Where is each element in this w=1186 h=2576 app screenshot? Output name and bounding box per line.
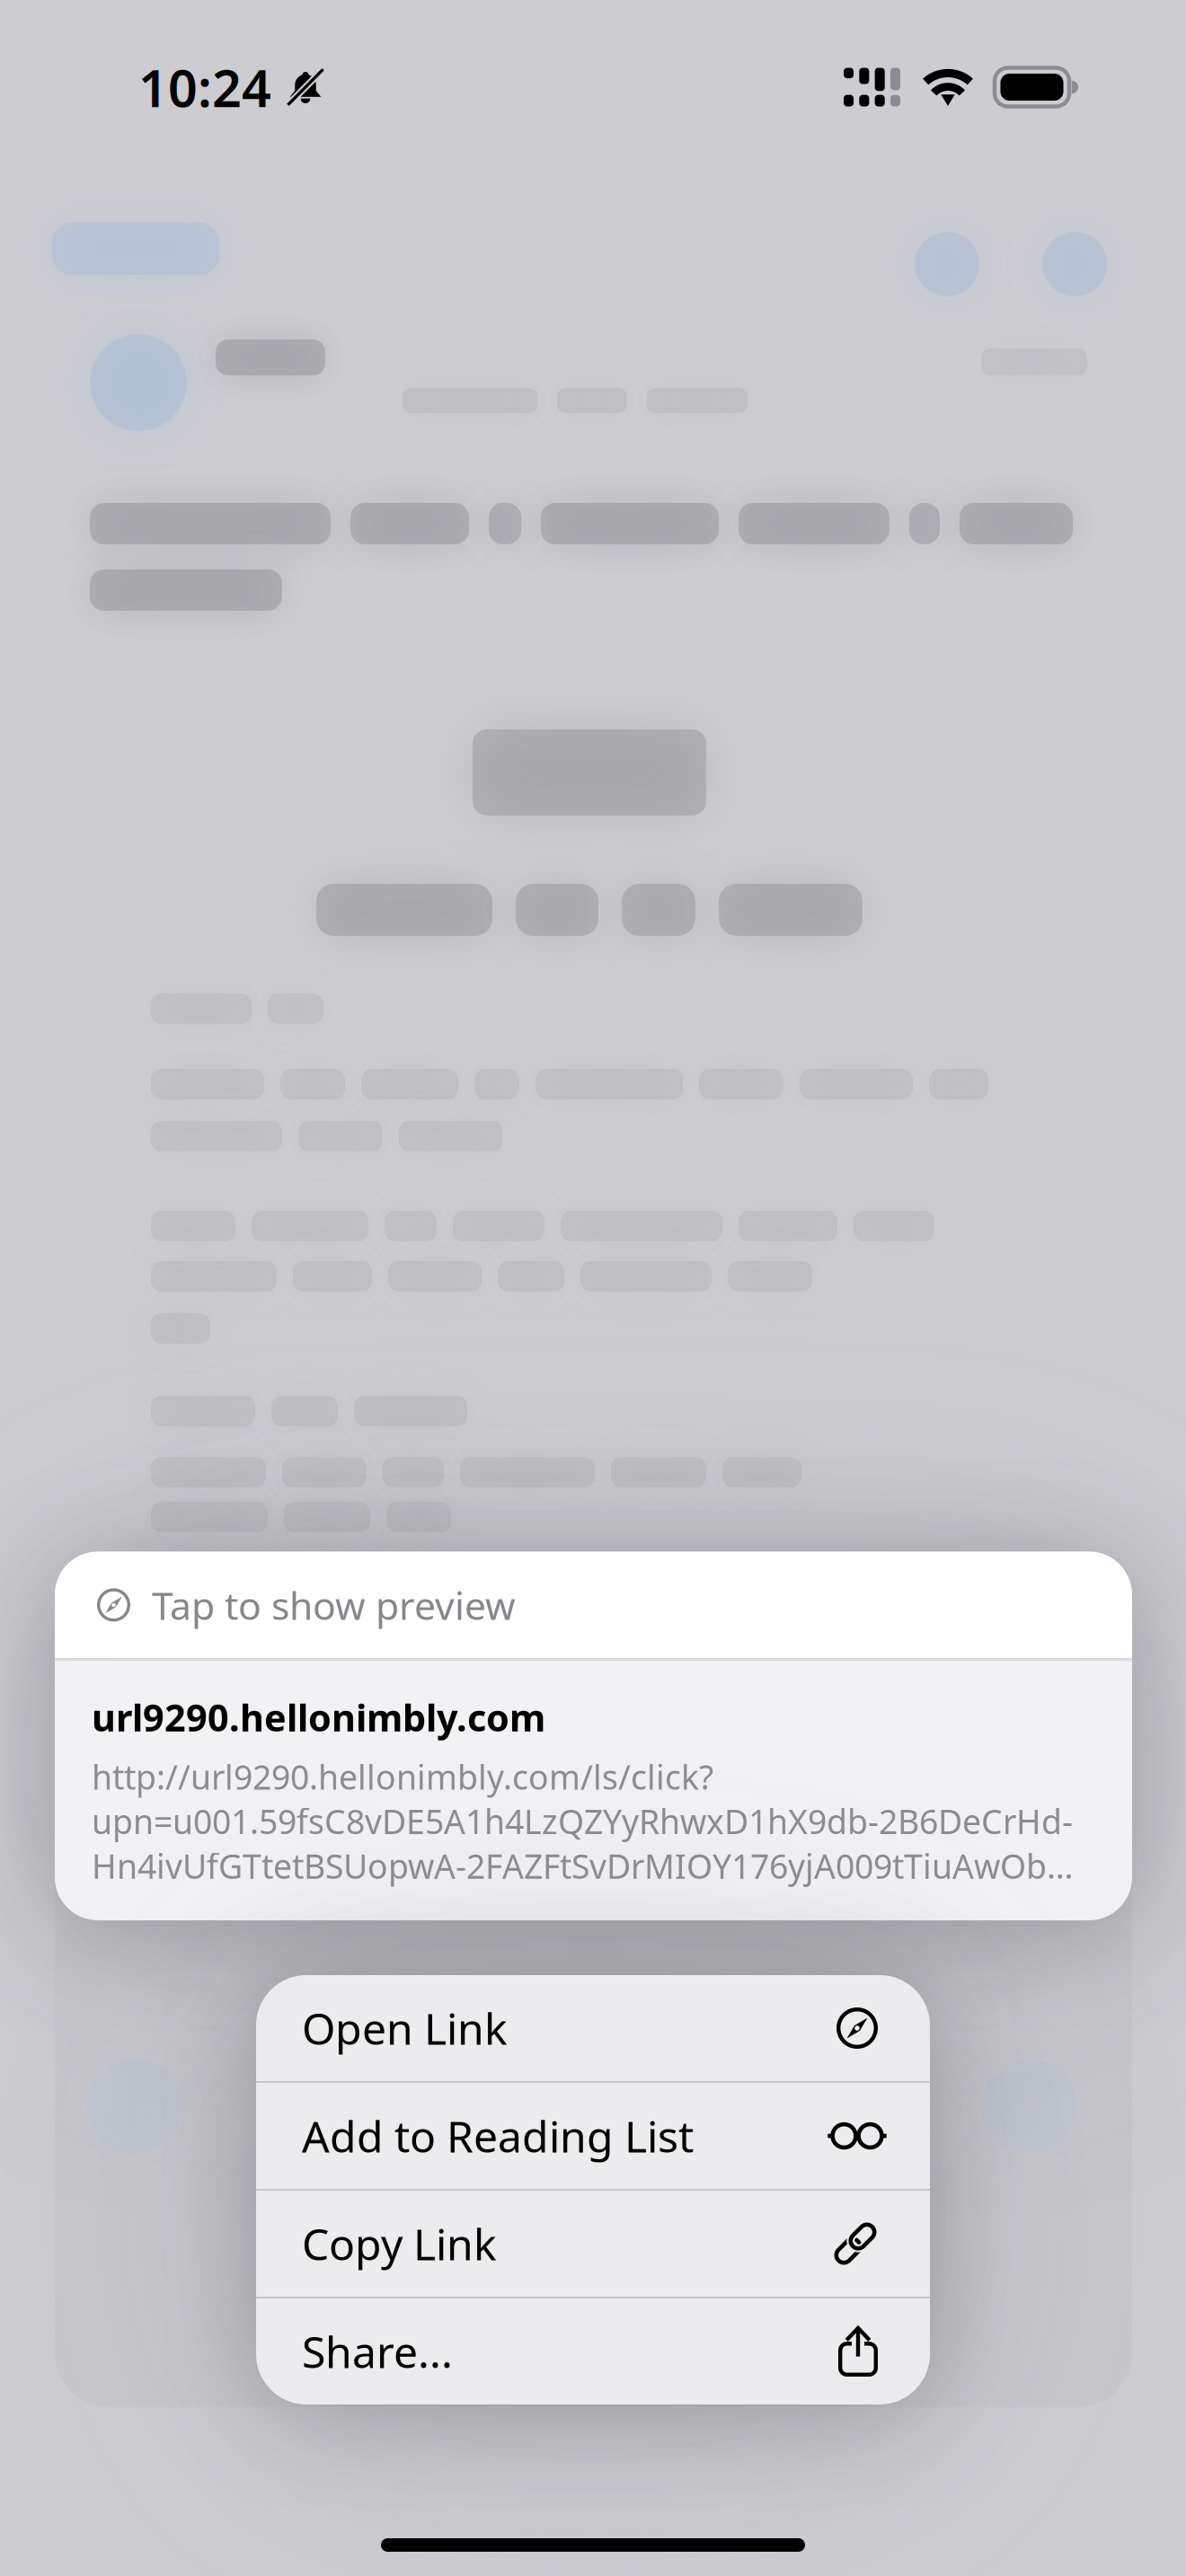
staticText: Copy Link [302, 2215, 497, 2272]
staticText: url9290.hellonimbly.com [92, 1693, 545, 1742]
staticText: Tap to show preview [152, 1580, 516, 1630]
staticText: http://url9290.hellonimbly.com/ls/click?… [92, 1754, 1094, 1888]
button[interactable]: Tap to show preview [55, 1552, 1132, 1658]
button[interactable]: Add to Reading List [256, 2083, 930, 2189]
button[interactable]: Share... [256, 2298, 930, 2404]
staticText: Add to Reading List [302, 2107, 694, 2164]
button[interactable]: Copy Link [256, 2191, 930, 2297]
staticText: Open Link [302, 1999, 508, 2057]
staticText: Share... [302, 2323, 453, 2380]
button[interactable]: Open Link [256, 1975, 930, 2081]
staticText: 10:24 [138, 53, 271, 121]
